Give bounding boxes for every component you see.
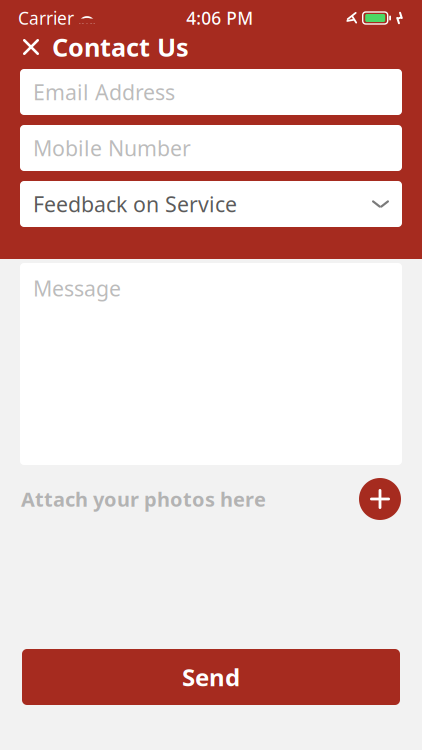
staticText: Carrier (18, 6, 74, 29)
button[interactable]: Email Address (20, 69, 402, 115)
staticText: Send (182, 661, 240, 693)
staticText: Email Address (33, 78, 175, 106)
staticText: Contact Us (52, 30, 189, 64)
button[interactable]: Send (22, 649, 400, 705)
button[interactable]: Feedback on Service (20, 181, 402, 227)
button[interactable]: Close Contact Us (0, 30, 422, 64)
staticText: Mobile Number (33, 134, 191, 162)
button[interactable]: Add photo (359, 478, 401, 520)
button[interactable]: Mobile Number (20, 125, 402, 171)
staticText: 4:06 PM (186, 6, 253, 29)
button[interactable]: Message (20, 263, 402, 465)
staticText: Message (33, 274, 121, 302)
staticText: Attach your photos here (21, 486, 266, 512)
staticText: Feedback on Service (33, 190, 237, 218)
